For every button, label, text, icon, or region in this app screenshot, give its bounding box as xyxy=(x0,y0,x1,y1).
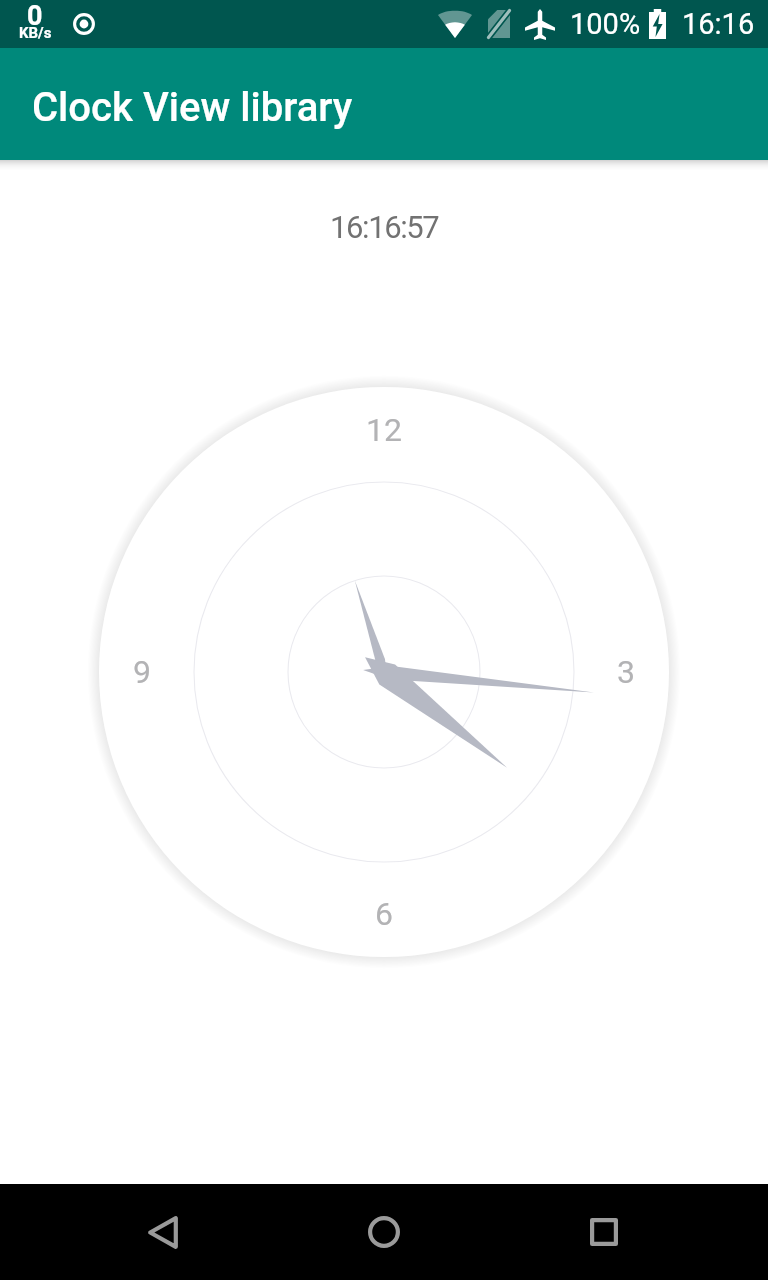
staticText: 16:16 xyxy=(682,7,755,41)
staticText: 100% xyxy=(570,7,641,41)
button[interactable]: Recent apps xyxy=(556,1184,652,1280)
button[interactable]: Home xyxy=(336,1184,432,1280)
staticText: 16:16:57 xyxy=(330,209,439,245)
staticText: Clock View library xyxy=(32,84,353,131)
staticText: 0 xyxy=(27,0,43,32)
button[interactable]: Back xyxy=(115,1184,211,1280)
staticText: KB/s xyxy=(19,24,52,42)
